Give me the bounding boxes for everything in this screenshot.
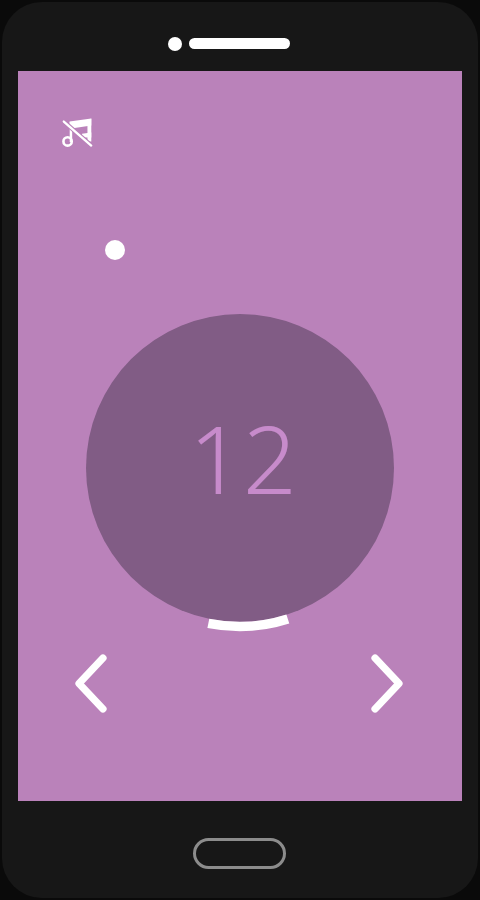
staticText: 12: [189, 394, 297, 522]
button[interactable]: Previous: [75, 654, 107, 713]
button[interactable]: 12: [86, 314, 394, 622]
button[interactable]: Home: [193, 838, 286, 869]
button[interactable]: Next: [371, 654, 403, 713]
button[interactable]: Music off: [60, 116, 97, 153]
